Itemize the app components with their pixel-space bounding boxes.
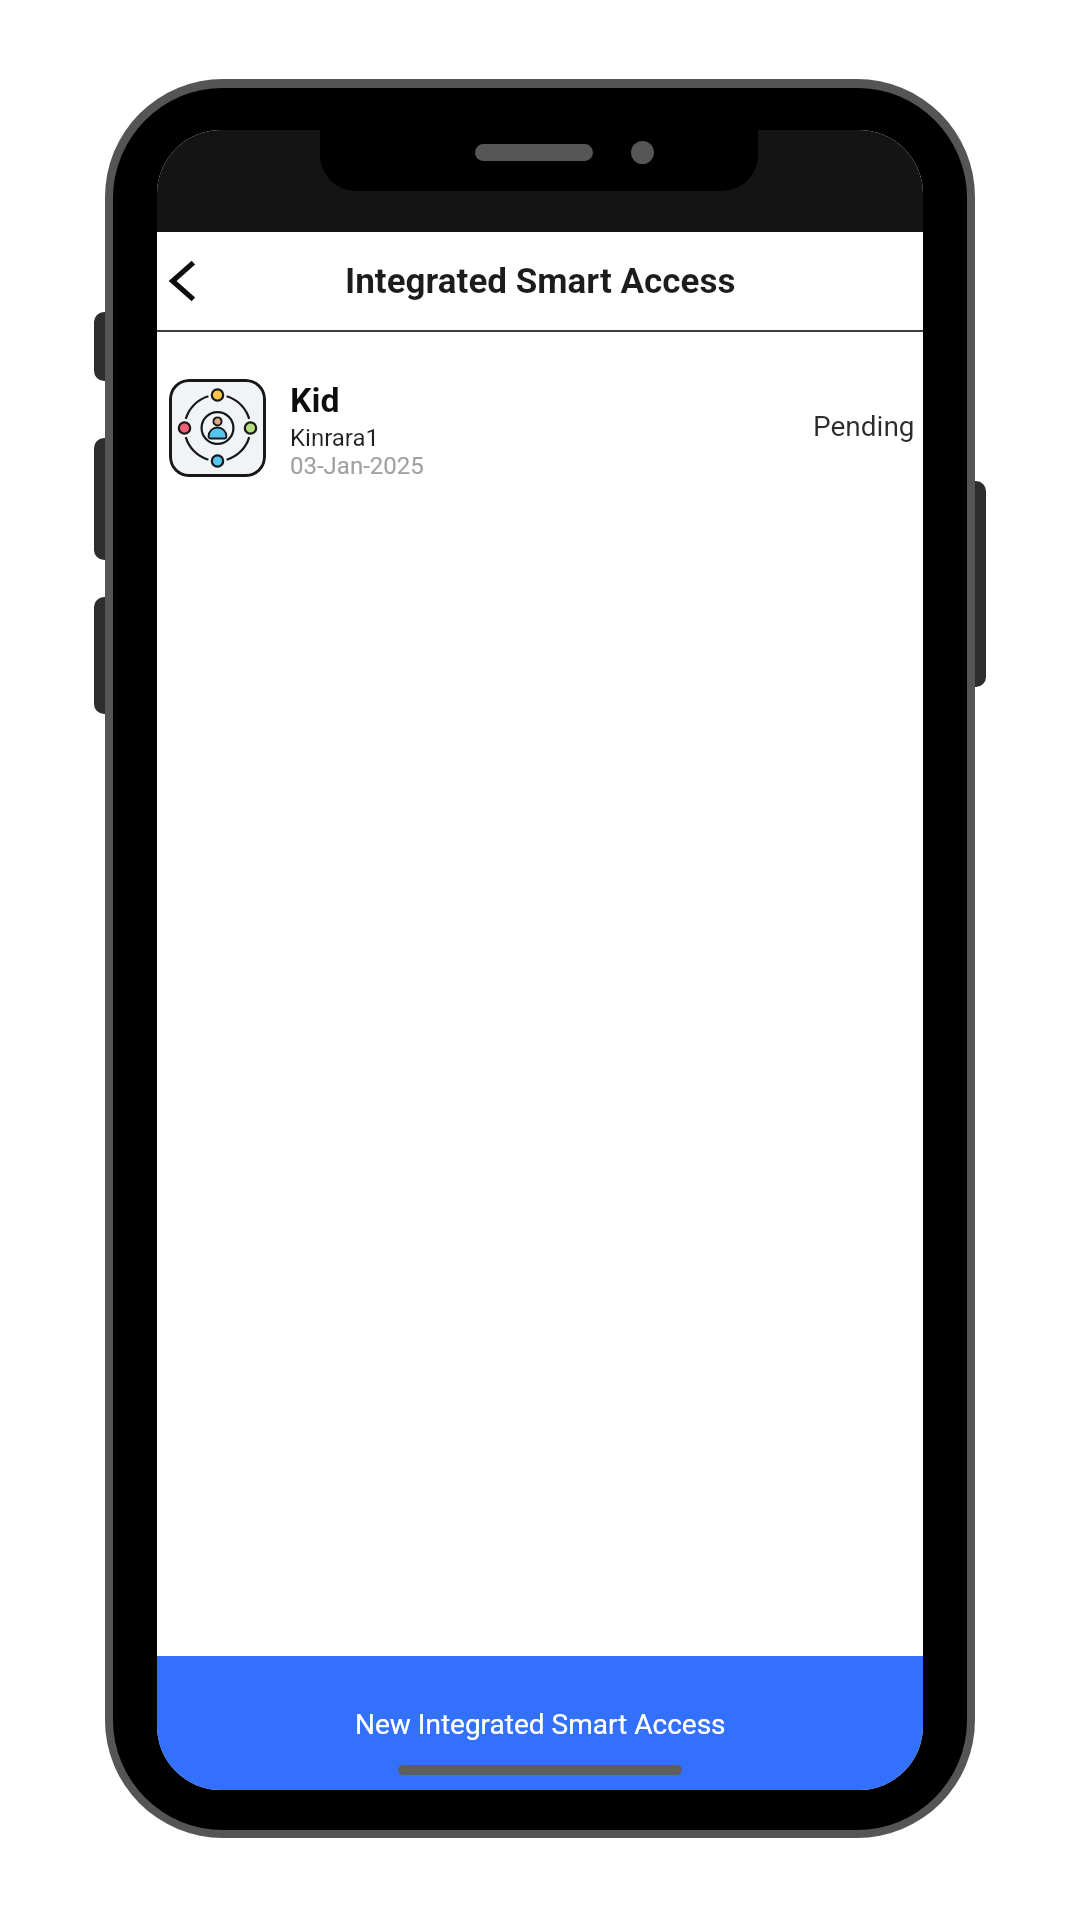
staticText: Kid — [290, 380, 340, 420]
staticText: Pending — [813, 410, 915, 443]
staticText: Kinrara1 — [290, 424, 380, 452]
staticText: Integrated Smart Access — [345, 261, 736, 302]
staticText: 03-Jan-2025 — [290, 452, 424, 480]
button[interactable]: Kid — [157, 332, 923, 500]
staticText: New Integrated Smart Access — [355, 1708, 726, 1741]
button[interactable]: Back — [157, 232, 229, 330]
button[interactable]: New Integrated Smart Access — [157, 1656, 923, 1790]
